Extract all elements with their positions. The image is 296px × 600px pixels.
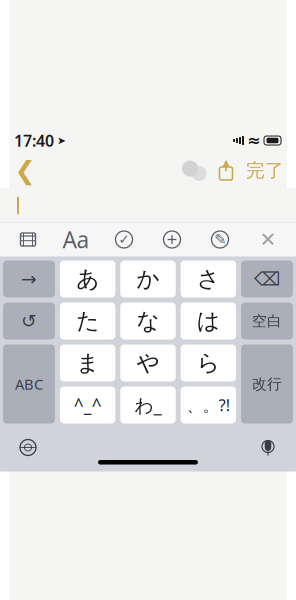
staticText: 空白 [252,312,282,330]
button[interactable]: な [120,302,176,339]
staticText: ^_^ [74,393,102,416]
staticText: 17:40 [14,130,54,151]
button[interactable]: Format [56,222,96,256]
button[interactable]: Markup [200,222,240,256]
staticText: ✓ [118,232,129,247]
staticText: ↺ [21,310,37,332]
staticText: 完了 [246,159,284,182]
button[interactable]: や [120,344,176,381]
button[interactable]: Next candidate [3,260,55,297]
staticText: ❮ [14,156,35,185]
button[interactable]: あ [60,260,115,297]
staticText: わ_ [134,393,161,417]
staticText: ら [197,349,220,377]
staticText: さ [197,265,220,293]
staticText: あ [76,265,99,293]
button[interactable]: Table [8,222,48,256]
button[interactable]: Undo [3,302,55,339]
button[interactable]: Collaborate [178,155,210,185]
button[interactable]: Space [241,302,293,339]
staticText: か [136,265,159,293]
button[interactable]: わ_ [120,386,176,423]
staticText: ✕ [259,228,276,251]
button[interactable]: Delete [241,260,293,297]
staticText: ⌫ [254,268,280,290]
staticText: → [21,268,37,290]
button[interactable]: た [60,302,115,339]
button[interactable]: Change keyboard [8,431,48,463]
button[interactable]: Return [241,344,293,423]
staticText: ✎ [214,231,226,248]
button[interactable]: ABC [3,344,55,423]
button[interactable]: か [120,260,176,297]
button[interactable]: Insert [152,222,192,256]
button[interactable]: ま [60,344,115,381]
button[interactable]: さ [181,260,236,297]
staticText: Aa [62,224,89,254]
staticText: な [136,307,159,335]
button[interactable]: Share [210,155,242,185]
button[interactable]: ^_^ [60,386,115,423]
button[interactable]: ら [181,344,236,381]
button[interactable]: 完了 [242,155,288,185]
staticText: ➤ [57,134,66,146]
staticText: た [76,307,99,335]
button[interactable]: 、。?! [181,386,236,423]
staticText: ▲ [222,157,229,168]
staticText: ABC [15,374,43,394]
staticText: ≈ [247,131,260,150]
button[interactable]: Back [8,155,42,185]
staticText: ま [76,349,99,377]
button[interactable]: Dictate [248,431,288,463]
staticText: 、。?! [187,394,230,416]
staticText: は [197,307,220,335]
button[interactable]: は [181,302,236,339]
staticText: や [136,349,159,377]
button[interactable]: Checklist [104,222,144,256]
staticText: 改行 [252,375,282,393]
button[interactable]: Hide keyboard [248,222,288,256]
